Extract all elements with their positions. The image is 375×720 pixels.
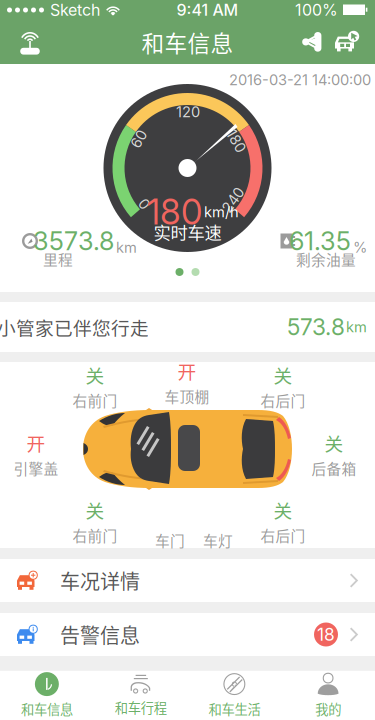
staticText: 240 <box>219 191 246 209</box>
staticText: 61.35 <box>289 226 351 256</box>
staticText: 右后门 <box>260 524 305 546</box>
button[interactable]: Device <box>10 20 50 64</box>
staticText: 和车行程 <box>115 698 167 717</box>
button[interactable]: 车况详情 <box>0 559 375 602</box>
staticText: 剩余油量 <box>296 248 356 270</box>
staticText: 关 <box>324 429 343 456</box>
staticText: km <box>346 318 367 336</box>
staticText: 0 <box>139 195 148 213</box>
button[interactable]: 我的 <box>281 670 375 720</box>
button[interactable]: Locate car <box>329 20 365 64</box>
button[interactable]: 和车行程 <box>94 670 188 720</box>
staticText: 我的 <box>315 699 341 718</box>
button[interactable]: 和车信息 <box>0 670 94 720</box>
button[interactable]: 和车生活 <box>187 670 281 720</box>
staticText: 车况详情 <box>60 566 140 595</box>
staticText: 右前门 <box>72 524 117 546</box>
staticText: km <box>116 239 137 256</box>
button[interactable]: Share <box>295 20 329 64</box>
staticText: 120 <box>176 103 200 121</box>
staticText: km/h <box>204 203 239 221</box>
staticText: 180 <box>147 191 202 233</box>
staticText: 关 <box>273 361 292 388</box>
staticText: 引擎盖 <box>13 457 58 479</box>
staticText: 后备箱 <box>311 457 356 479</box>
staticText: 车顶棚 <box>164 385 209 407</box>
staticText: 573.8 <box>287 313 345 341</box>
staticText: 开 <box>26 429 45 456</box>
staticText: % <box>353 239 367 256</box>
staticText: 3573.8 <box>33 226 114 256</box>
staticText: 180 <box>224 132 248 150</box>
staticText: 60 <box>130 130 148 148</box>
staticText: 和车生活 <box>208 699 260 718</box>
staticText: 关 <box>273 496 292 523</box>
button[interactable]: 告警信息 <box>0 613 375 656</box>
staticText: Sketch <box>50 0 100 20</box>
staticText: 右后门 <box>260 389 305 411</box>
staticText: 车门 <box>155 529 185 551</box>
staticText: 实时车速 <box>153 219 221 245</box>
staticText: 里程 <box>43 248 73 270</box>
staticText: 2016-03-21 14:00:00 <box>229 71 371 89</box>
staticText: 开 <box>177 357 196 384</box>
staticText: 和车信息 <box>141 26 233 58</box>
staticText: 18 <box>317 624 335 645</box>
staticText: 右前门 <box>72 389 117 411</box>
staticText: 9:41 AM <box>176 0 238 20</box>
staticText: 100% <box>295 0 338 20</box>
staticText: 关 <box>85 496 104 523</box>
staticText: 关 <box>85 361 104 388</box>
staticText: 小管家已伴您行走 <box>0 313 149 340</box>
staticText: 和车信息 <box>21 699 73 718</box>
staticText: 车灯 <box>203 529 233 551</box>
staticText: 告警信息 <box>60 620 140 649</box>
